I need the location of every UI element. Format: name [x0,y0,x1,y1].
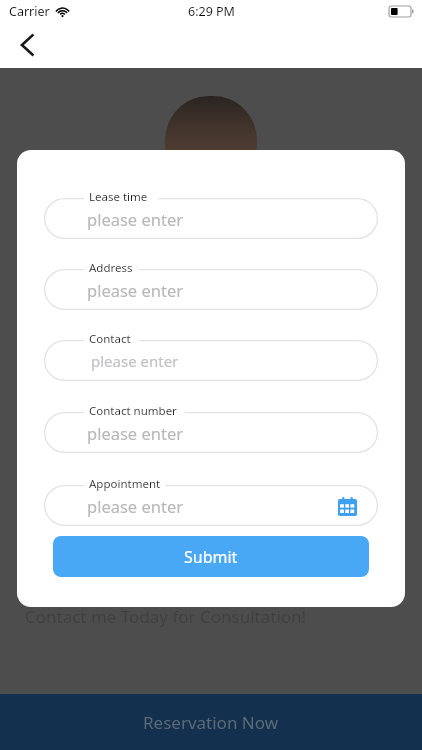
staticText: Reservation Now [143,711,279,734]
staticText: please enter [91,351,179,371]
staticText: please enter [87,495,184,517]
button[interactable]: Back [8,25,48,65]
staticText: 6:29 PM [188,3,235,20]
button[interactable]: Pick date [334,493,360,519]
staticText: please enter [87,422,184,444]
staticText: Carrier [9,3,50,20]
staticText: please enter [87,208,184,230]
staticText: Contact number [89,403,177,419]
staticText: Address [89,260,133,276]
staticText: Submit [184,546,238,568]
staticText: Contact me Today for Consultation! [25,605,307,628]
staticText: Appointment [89,476,161,492]
button[interactable]: Reservation Now [0,694,422,750]
staticText: please enter [87,279,184,301]
staticText: Contact [89,331,131,347]
staticText: Lease time [89,189,148,205]
button[interactable]: Submit [53,536,369,577]
